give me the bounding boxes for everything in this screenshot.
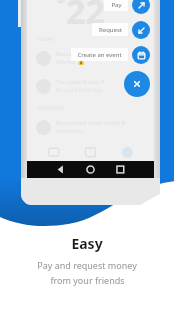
staticText: Market 💰: [56, 58, 86, 66]
button[interactable]: Pay: [104, 0, 128, 11]
button[interactable]: You paid Travis P: [33, 75, 160, 97]
staticText: YESTERDAY: [37, 105, 65, 112]
button[interactable]: Create an event: [71, 48, 128, 61]
staticText: Pay and request money: [37, 259, 137, 271]
button[interactable]: Request: [92, 23, 128, 36]
button[interactable]: Requested from Haley B: [33, 116, 160, 138]
staticText: Pay: [111, 1, 122, 9]
staticText: 22: [66, 0, 105, 34]
staticText: Request: [99, 26, 122, 34]
button[interactable]: Create an event: [132, 46, 150, 64]
button[interactable]: Request: [132, 21, 150, 39]
staticText: from your friends: [50, 274, 125, 286]
staticText: Bruno's birthday: [56, 86, 103, 94]
staticText: Received from Trojan B: [56, 50, 123, 58]
button[interactable]: Close: [124, 71, 150, 97]
button[interactable]: Received from Trojan B: [33, 47, 160, 69]
staticText: Starbucks: [56, 127, 84, 135]
staticText: $: [57, 0, 66, 7]
staticText: TODAY: [37, 36, 54, 43]
staticText: You paid Travis P: [56, 78, 105, 86]
staticText: Requested from Haley B: [56, 119, 126, 127]
staticText: Easy: [71, 234, 103, 253]
button[interactable]: Pay: [132, 0, 150, 14]
staticText: Create an event: [77, 51, 122, 59]
